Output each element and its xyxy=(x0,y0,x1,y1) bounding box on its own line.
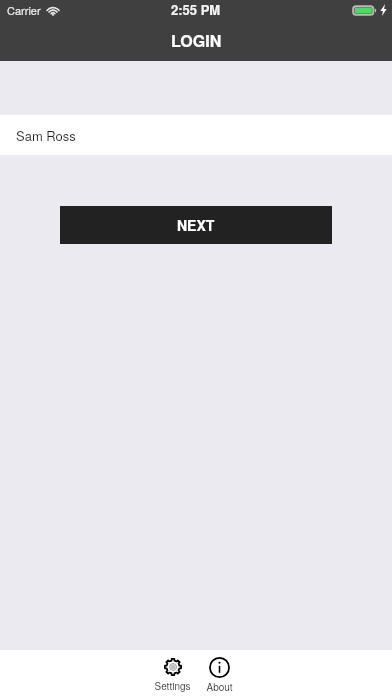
other: About xyxy=(209,657,230,678)
staticText: Carrier xyxy=(7,2,41,18)
button[interactable]: NEXT xyxy=(60,206,332,244)
staticText: Sam Ross xyxy=(16,126,76,145)
button[interactable]: Sam Ross xyxy=(0,115,392,155)
staticText: 2:55 PM xyxy=(171,0,221,19)
staticText: LOGIN xyxy=(171,29,222,52)
staticText: Settings xyxy=(154,679,191,693)
button[interactable]: Settings xyxy=(149,650,196,696)
button[interactable]: About xyxy=(196,650,243,696)
staticText: About xyxy=(206,680,233,694)
staticText: NEXT xyxy=(177,215,215,235)
other: Settings xyxy=(163,657,183,677)
